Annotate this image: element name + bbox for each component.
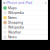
staticText: Wikipedia xyxy=(8,11,24,15)
staticText: Maps xyxy=(8,6,17,10)
button[interactable]: Maps xyxy=(2,6,48,11)
button[interactable]: Wikipedia xyxy=(2,25,48,30)
staticText: iPhone and iPad xyxy=(6,1,32,5)
staticText: News xyxy=(8,35,17,39)
button[interactable]: Notes xyxy=(2,15,48,20)
staticText: Notes xyxy=(8,16,17,20)
button[interactable]: Weather xyxy=(2,30,48,35)
button[interactable]: iPhone and iPad xyxy=(2,0,48,6)
button[interactable]: Wikipedia xyxy=(2,11,48,15)
button[interactable]: News xyxy=(2,35,48,40)
button[interactable]: Shopping xyxy=(2,20,48,25)
staticText: Shopping xyxy=(8,21,23,25)
staticText: Wikipedia xyxy=(8,25,24,29)
staticText: Weather xyxy=(8,30,21,34)
